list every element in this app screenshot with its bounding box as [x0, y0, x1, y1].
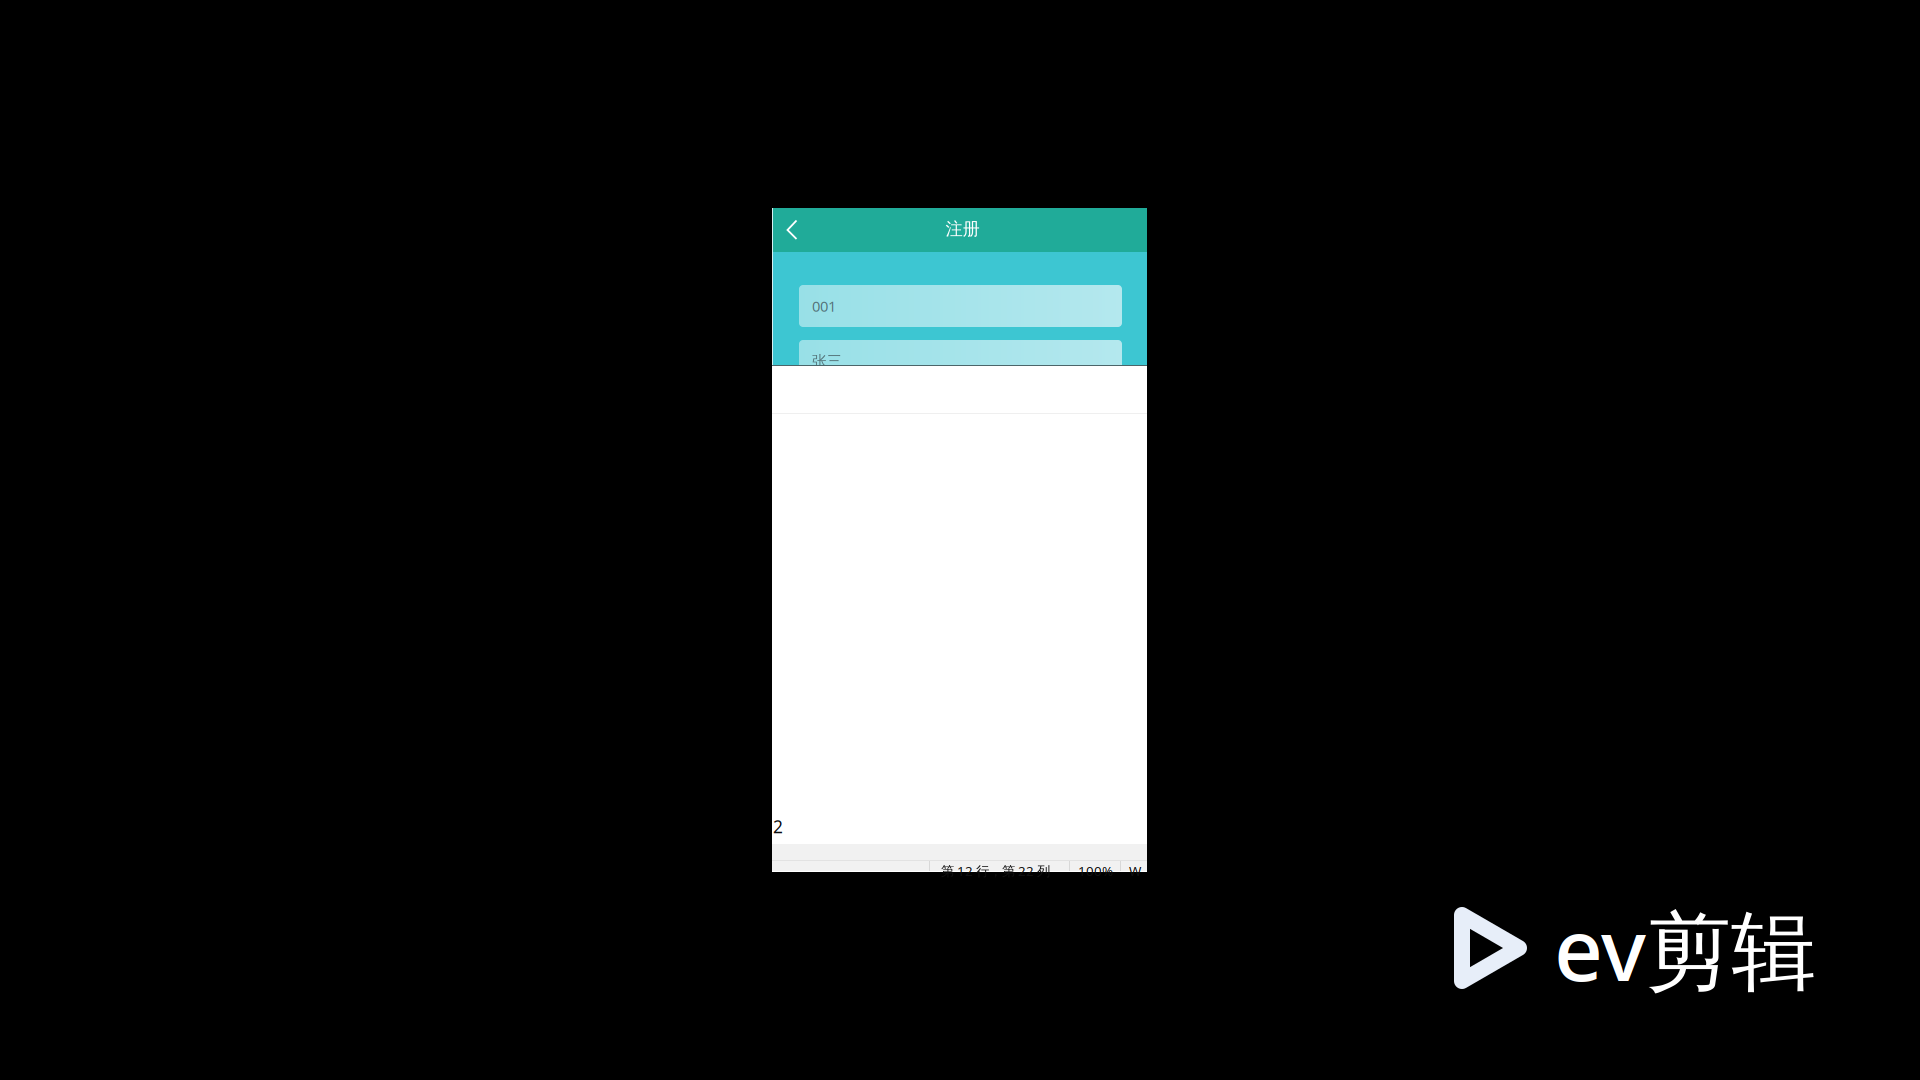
staticText: 张三	[812, 352, 842, 370]
staticText: 2	[773, 815, 783, 838]
staticText: 注册	[945, 218, 979, 240]
button[interactable]: 001	[799, 285, 1122, 327]
button[interactable]: 张三	[799, 340, 1122, 382]
staticText: W	[1129, 862, 1141, 880]
staticText: ev剪辑	[1554, 891, 1816, 1005]
staticText: 100%	[1078, 862, 1113, 880]
staticText: 001	[812, 296, 836, 316]
staticText: 第 12 行，第 22 列	[941, 862, 1050, 880]
button[interactable]: Back	[772, 208, 814, 252]
